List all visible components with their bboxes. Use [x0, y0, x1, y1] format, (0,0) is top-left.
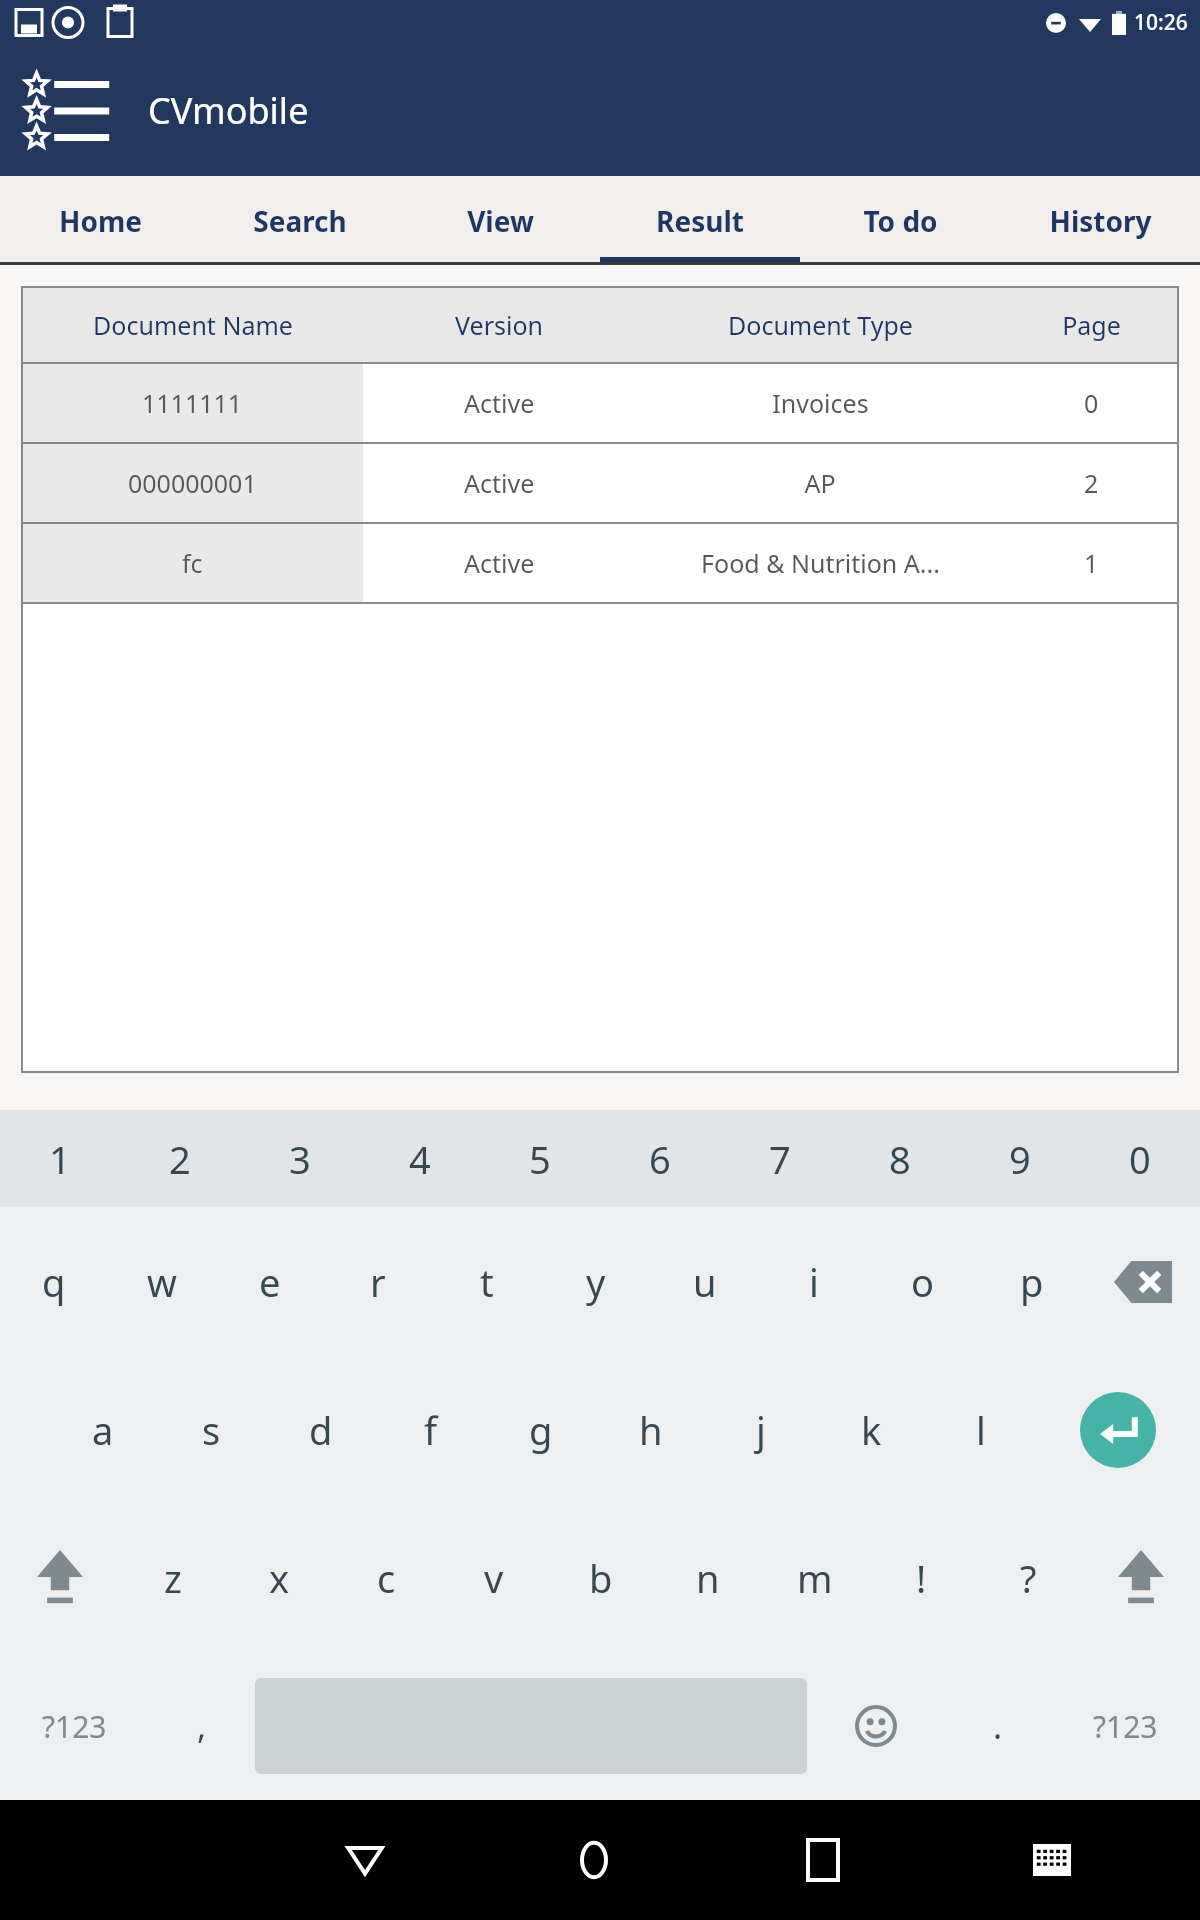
button[interactable]: y: [541, 1207, 650, 1356]
button[interactable]: z: [119, 1504, 226, 1652]
button[interactable]: .: [945, 1652, 1051, 1800]
staticText: ?: [1020, 1552, 1037, 1604]
staticText: View: [467, 202, 534, 240]
button[interactable]: v: [440, 1504, 547, 1652]
button[interactable]: 8: [840, 1110, 960, 1207]
button[interactable]: ?: [975, 1504, 1082, 1652]
staticText: 1: [49, 1133, 71, 1185]
button[interactable]: !: [868, 1504, 975, 1652]
button[interactable]: Home: [0, 176, 200, 265]
button[interactable]: ?123: [0, 1652, 149, 1800]
button[interactable]: History: [1000, 176, 1200, 265]
button[interactable]: 2: [120, 1110, 240, 1207]
button[interactable]: ,: [149, 1652, 255, 1800]
button[interactable]: 4: [360, 1110, 480, 1207]
staticText: x: [269, 1552, 290, 1604]
button[interactable]: c: [333, 1504, 440, 1652]
button[interactable]: Result: [600, 176, 800, 265]
button[interactable]: Open navigation menu: [8, 56, 118, 166]
button[interactable]: 5: [480, 1110, 600, 1207]
button[interactable]: 6: [600, 1110, 720, 1207]
staticText: Document Name: [93, 308, 293, 342]
staticText: z: [164, 1552, 182, 1604]
staticText: e: [259, 1256, 281, 1308]
button[interactable]: Search: [200, 176, 400, 265]
button[interactable]: Shift: [1082, 1504, 1200, 1652]
staticText: 7: [769, 1133, 791, 1185]
button[interactable]: View: [400, 176, 600, 265]
button[interactable]: b: [547, 1504, 654, 1652]
button[interactable]: j: [706, 1356, 816, 1504]
button[interactable]: h: [596, 1356, 706, 1504]
button[interactable]: 1111111: [22, 364, 1178, 442]
button[interactable]: p: [977, 1207, 1086, 1356]
staticText: 0: [1129, 1133, 1151, 1185]
button[interactable]: ?123: [1051, 1652, 1200, 1800]
button[interactable]: Home: [479, 1800, 708, 1920]
staticText: !: [916, 1552, 927, 1604]
staticText: ?123: [1093, 1706, 1158, 1747]
button[interactable]: 000000001: [22, 444, 1178, 522]
staticText: j: [756, 1404, 766, 1456]
staticText: Active: [464, 386, 535, 420]
button[interactable]: Backspace: [1086, 1207, 1200, 1356]
staticText: m: [797, 1552, 833, 1604]
button[interactable]: a: [48, 1356, 157, 1504]
staticText: Home: [59, 202, 142, 240]
button[interactable]: n: [654, 1504, 761, 1652]
button[interactable]: g: [486, 1356, 596, 1504]
staticText: .: [993, 1703, 1003, 1749]
staticText: Active: [464, 546, 535, 580]
staticText: 2: [169, 1133, 191, 1185]
staticText: r: [370, 1256, 386, 1308]
button[interactable]: i: [759, 1207, 868, 1356]
staticText: 5: [529, 1133, 551, 1185]
button[interactable]: Back: [250, 1800, 479, 1920]
staticText: b: [589, 1552, 613, 1604]
staticText: c: [377, 1552, 396, 1604]
button[interactable]: fc: [22, 524, 1178, 602]
button[interactable]: 9: [960, 1110, 1080, 1207]
button[interactable]: 0: [1080, 1110, 1200, 1207]
button[interactable]: e: [216, 1207, 324, 1356]
staticText: 1111111: [142, 386, 243, 420]
button[interactable]: To do: [800, 176, 1000, 265]
button[interactable]: u: [650, 1207, 759, 1356]
button[interactable]: 1: [0, 1110, 120, 1207]
button[interactable]: s: [157, 1356, 266, 1504]
button[interactable]: Enter: [1036, 1356, 1200, 1504]
button[interactable]: t: [432, 1207, 541, 1356]
staticText: Document Type: [728, 308, 913, 342]
staticText: Result: [656, 202, 744, 240]
button[interactable]: x: [226, 1504, 333, 1652]
staticText: y: [586, 1256, 606, 1308]
staticText: 9: [1009, 1133, 1031, 1185]
button[interactable]: r: [324, 1207, 432, 1356]
staticText: 10:26: [1134, 8, 1188, 37]
button[interactable]: Recent apps: [708, 1800, 937, 1920]
button[interactable]: 7: [720, 1110, 840, 1207]
staticText: p: [1020, 1256, 1044, 1308]
button[interactable]: q: [0, 1207, 108, 1356]
button[interactable]: k: [816, 1356, 926, 1504]
staticText: Invoices: [772, 386, 869, 420]
staticText: q: [42, 1256, 66, 1308]
button[interactable]: Shift: [0, 1504, 119, 1652]
button[interactable]: d: [266, 1356, 376, 1504]
button[interactable]: o: [868, 1207, 977, 1356]
button[interactable]: w: [108, 1207, 216, 1356]
staticText: Food & Nutrition A...: [701, 546, 940, 580]
staticText: d: [309, 1404, 333, 1456]
button[interactable]: f: [376, 1356, 486, 1504]
staticText: Search: [253, 202, 347, 240]
staticText: h: [639, 1404, 663, 1456]
button[interactable]: Emoji: [807, 1652, 945, 1800]
button[interactable]: Hide keyboard: [937, 1800, 1166, 1920]
button[interactable]: 3: [240, 1110, 360, 1207]
staticText: w: [147, 1256, 177, 1308]
staticText: f: [424, 1404, 438, 1456]
staticText: i: [809, 1256, 819, 1308]
button[interactable]: l: [926, 1356, 1036, 1504]
button[interactable]: m: [761, 1504, 868, 1652]
